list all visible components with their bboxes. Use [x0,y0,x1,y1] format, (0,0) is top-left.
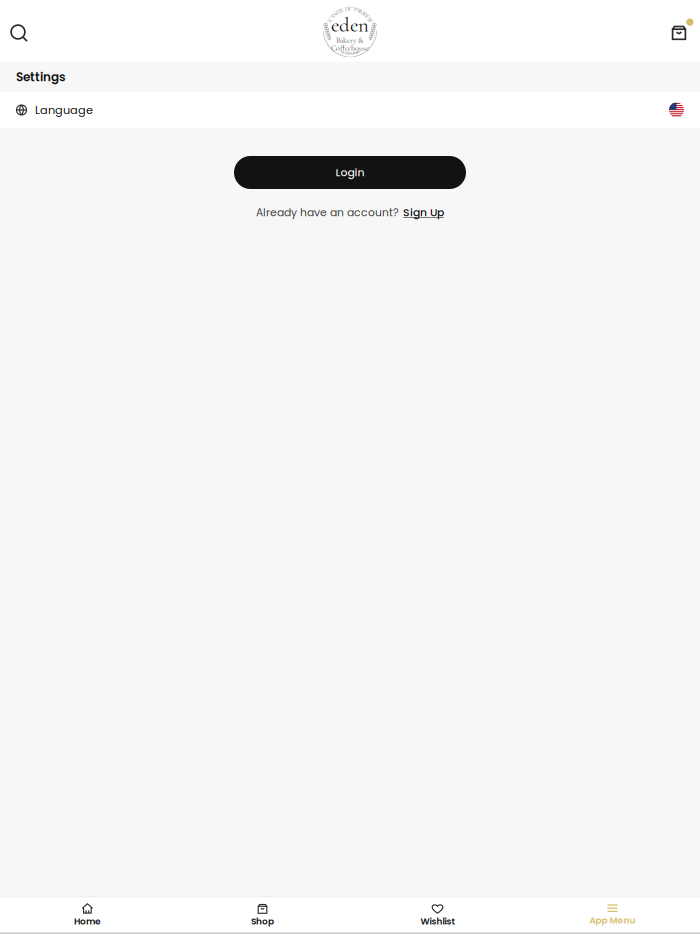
staticText: I [353,51,354,55]
staticText: Sign Up [403,205,444,220]
staticText: Settings [16,69,66,85]
staticText: Already have an account? [256,205,399,220]
staticText: Login [335,165,364,180]
staticText: I [366,14,368,20]
staticText: Q [347,51,350,56]
staticText [352,6,353,12]
staticText: E [340,7,343,13]
staticText: eden [331,12,369,37]
staticText: F [348,6,351,12]
staticText: Coffeehouse [331,43,369,53]
staticText: E [355,50,357,55]
staticText: T [338,9,341,15]
button[interactable]: Cart [659,13,699,53]
staticText: M [354,51,357,55]
staticText: Y [340,49,342,54]
button[interactable]: Shop [175,897,350,933]
staticText: A [333,12,336,18]
staticText: A [328,18,331,24]
staticText: Shop [251,915,274,927]
staticText: D [364,12,367,18]
staticText: E [369,18,372,24]
staticText: L [344,51,346,55]
staticText: App Menu [589,914,635,926]
staticText: S [368,16,370,22]
staticText: Bakery & [336,35,364,45]
staticText: A [345,51,348,55]
staticText: R [359,9,362,15]
staticText [344,7,345,13]
staticText: I [343,50,344,55]
button[interactable]: Wishlist [350,897,525,933]
staticText: P [358,49,360,54]
button[interactable]: App Menu [525,897,700,933]
staticText: O [345,6,349,12]
staticText: A [357,7,360,13]
staticText: T [341,50,343,54]
button[interactable]: Home [0,897,175,933]
staticText: U [351,51,354,56]
button[interactable]: Login [234,156,466,189]
staticText [331,16,332,22]
button[interactable]: Search [0,13,39,53]
staticText: Language [35,102,93,118]
staticText: M [350,51,353,56]
button[interactable]: Language [0,92,700,128]
button[interactable]: Sign Up [403,205,444,220]
staticText: P [354,7,357,13]
staticText: A [361,10,364,16]
staticText: T [331,14,334,20]
staticText: Home [74,915,101,927]
staticText: U [346,51,349,56]
staticText: Wishlist [420,915,454,927]
staticText: S [336,10,338,16]
staticText: R [357,50,359,54]
